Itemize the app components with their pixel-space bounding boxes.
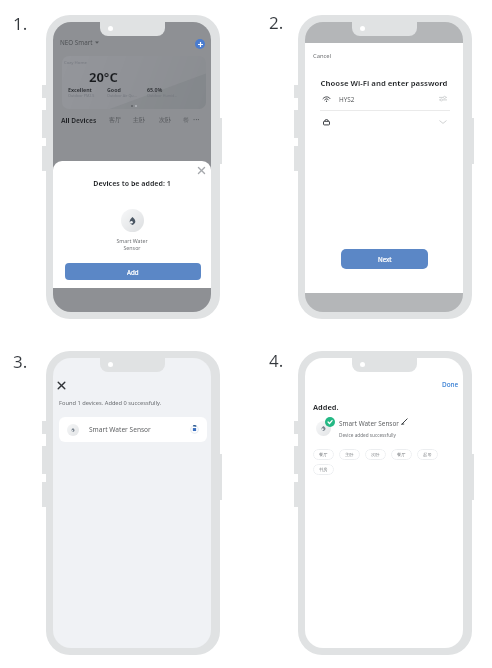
button[interactable]: 餐厅 (313, 449, 334, 460)
staticText: Added. (313, 402, 339, 412)
button[interactable]: Cancel (313, 52, 332, 60)
staticText: Next (378, 255, 392, 263)
staticText: HYS2 (339, 95, 355, 104)
button[interactable]: 书房 (313, 464, 334, 475)
staticText: Smart Water Sensor (89, 425, 151, 434)
staticText: 餐厅 (319, 452, 328, 457)
button[interactable]: Rename device (401, 418, 408, 425)
button[interactable]: Next (341, 249, 428, 269)
staticText: Smart Water Sensor (339, 419, 399, 428)
button[interactable]: Close (197, 166, 206, 175)
staticText: Cozy Home (64, 59, 87, 65)
button[interactable]: 次卧 (365, 449, 386, 460)
staticText: Add (127, 268, 139, 276)
staticText: 65.0% (147, 86, 163, 93)
staticText: Found 1 devices. Added 0 successfully. (59, 399, 162, 407)
button[interactable]: Add (65, 263, 201, 280)
button[interactable]: 起居 (417, 449, 438, 460)
staticText: Devices to be added: 1 (53, 179, 211, 189)
staticText: 20°C (89, 68, 118, 86)
staticText: Cancel (313, 52, 332, 60)
staticText: ··· (193, 114, 200, 125)
staticText: 主卧 (133, 116, 146, 124)
staticText: Device added successfully (339, 432, 396, 438)
button[interactable]: Add device (195, 39, 205, 49)
staticText: 4. (269, 349, 284, 372)
staticText: 2. (269, 11, 284, 34)
staticText: 主卧 (345, 452, 354, 457)
staticText: 餐 (183, 116, 190, 124)
staticText: Smart Water Sensor (53, 237, 211, 252)
staticText: 客厅 (109, 116, 122, 124)
staticText: 起居 (423, 452, 432, 457)
staticText: 次卧 (371, 452, 380, 457)
staticText: NEO Smart (60, 38, 93, 47)
staticText: Outdoor PM2.5 (68, 93, 95, 98)
staticText: 3. (13, 350, 28, 373)
staticText: 餐厅 (397, 452, 406, 457)
staticText: All Devices (61, 116, 97, 125)
button[interactable]: Done (442, 380, 459, 389)
staticText: Choose Wi-Fi and enter password (305, 78, 463, 88)
staticText: Good (107, 86, 121, 93)
staticText: Excellent (68, 86, 92, 93)
staticText: 次卧 (159, 116, 172, 124)
staticText: Outdoor Humid... (147, 93, 178, 98)
staticText: 书房 (319, 467, 328, 472)
staticText: Outdoor Air Qu... (107, 93, 137, 98)
button[interactable]: 主卧 (339, 449, 360, 460)
button[interactable]: Smart Water Sensor (59, 417, 207, 442)
staticText: Done (442, 380, 459, 389)
staticText: 1. (13, 12, 28, 35)
button[interactable]: Close (56, 380, 67, 391)
button[interactable]: 餐厅 (391, 449, 412, 460)
button[interactable]: NEO Smart (60, 38, 99, 47)
